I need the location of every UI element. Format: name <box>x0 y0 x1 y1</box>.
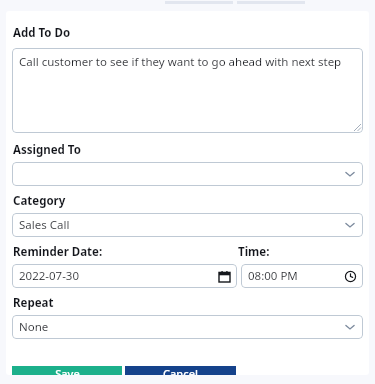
staticText: Add To Do <box>13 25 71 41</box>
button[interactable]: Call customer to see if they want to go … <box>12 48 363 133</box>
button[interactable]: Save <box>12 366 122 375</box>
staticText: Sales Call <box>19 217 344 233</box>
other: Pick time <box>345 271 356 282</box>
button[interactable]: Sales Call <box>12 213 363 237</box>
staticText: 2022-07-30 <box>19 268 219 284</box>
staticText: Time: <box>238 244 270 260</box>
staticText: None <box>19 319 344 335</box>
staticText: Reminder Date: <box>13 244 237 260</box>
button[interactable]: None <box>12 315 363 339</box>
button[interactable]: 08:00 PM <box>241 264 363 288</box>
staticText: Category <box>13 193 66 209</box>
other: Pick date <box>219 271 230 282</box>
button[interactable]: 2022-07-30 <box>12 264 237 288</box>
staticText: Save <box>55 366 80 375</box>
staticText: Repeat <box>13 295 54 311</box>
button[interactable] <box>12 162 363 186</box>
staticText: Call customer to see if they want to go … <box>19 54 342 70</box>
staticText: 08:00 PM <box>248 268 345 284</box>
staticText: Cancel <box>163 366 198 375</box>
staticText: Assigned To <box>13 142 81 158</box>
button[interactable]: Cancel <box>125 366 236 375</box>
